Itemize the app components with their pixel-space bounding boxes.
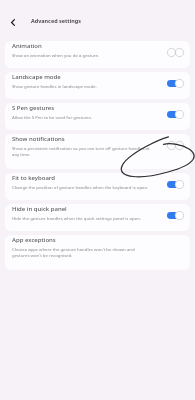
- staticText: Fit to keyboard: [12, 174, 55, 182]
- button[interactable]: S Pen gestures: [5, 103, 190, 130]
- staticText: Hide the gesture handles when the quick …: [12, 215, 141, 221]
- staticText: Choose apps where the gesture handles wo…: [12, 246, 150, 258]
- button[interactable]: Animation: [5, 41, 190, 68]
- staticText: Show notifications: [12, 135, 65, 143]
- button[interactable]: Turn off: [167, 79, 184, 88]
- button[interactable]: Turn on: [167, 48, 184, 57]
- staticText: Advanced settings: [31, 17, 82, 24]
- button[interactable]: Hide in quick panel: [5, 204, 190, 231]
- button[interactable]: Turn off: [167, 180, 184, 189]
- staticText: App exceptions: [12, 236, 56, 244]
- staticText: Show gesture handles in landscape mode.: [12, 83, 97, 89]
- staticText: Show an animation when you do a gesture.: [12, 52, 100, 58]
- button[interactable]: Navigate up: [6, 16, 19, 29]
- button[interactable]: Fit to keyboard: [5, 173, 190, 200]
- button[interactable]: Turn on: [167, 141, 184, 150]
- button[interactable]: Landscape mode: [5, 72, 190, 99]
- button[interactable]: App exceptions: [5, 235, 190, 270]
- button[interactable]: Turn off: [167, 110, 184, 119]
- staticText: Change the position of gesture handles w…: [12, 184, 149, 190]
- button[interactable]: Turn off: [167, 211, 184, 220]
- staticText: S Pen gestures: [12, 104, 55, 112]
- staticText: Landscape mode: [12, 73, 61, 81]
- staticText: Allow the S Pen to be used for gestures.: [12, 114, 92, 120]
- staticText: Hide in quick panel: [12, 205, 67, 213]
- button[interactable]: Show notifications: [5, 134, 190, 169]
- staticText: Animation: [12, 42, 42, 50]
- staticText: Show a persistent notification so you ca…: [12, 145, 150, 157]
